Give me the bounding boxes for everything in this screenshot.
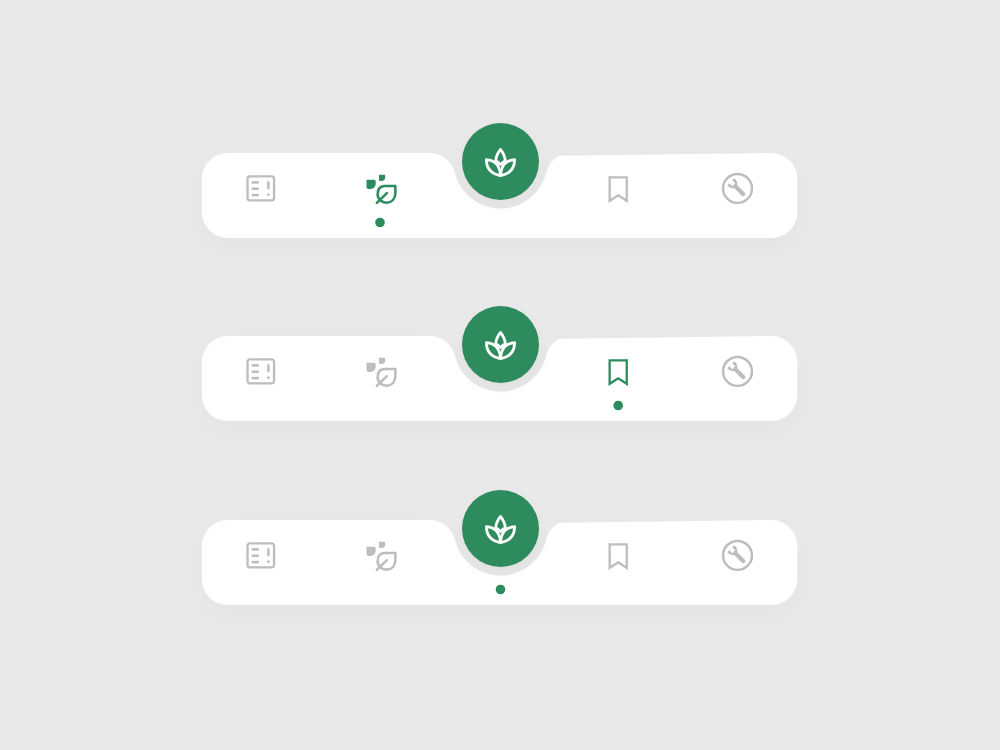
button[interactable]: Add plant (462, 490, 539, 567)
button[interactable]: Tools (704, 522, 772, 602)
button[interactable]: Saved (584, 338, 652, 418)
button[interactable]: Updates (227, 155, 295, 235)
button[interactable]: My plants (346, 522, 414, 602)
button[interactable]: My plants (346, 338, 414, 418)
button[interactable]: Tools (704, 338, 772, 418)
button[interactable]: Add plant (462, 123, 539, 200)
button[interactable]: Add plant (462, 306, 539, 383)
button[interactable]: Tools (704, 155, 772, 235)
button[interactable]: My plants (346, 155, 414, 235)
button[interactable]: Saved (584, 522, 652, 602)
button[interactable]: Updates (227, 522, 295, 602)
button[interactable]: Updates (227, 338, 295, 418)
button[interactable]: Saved (584, 155, 652, 235)
